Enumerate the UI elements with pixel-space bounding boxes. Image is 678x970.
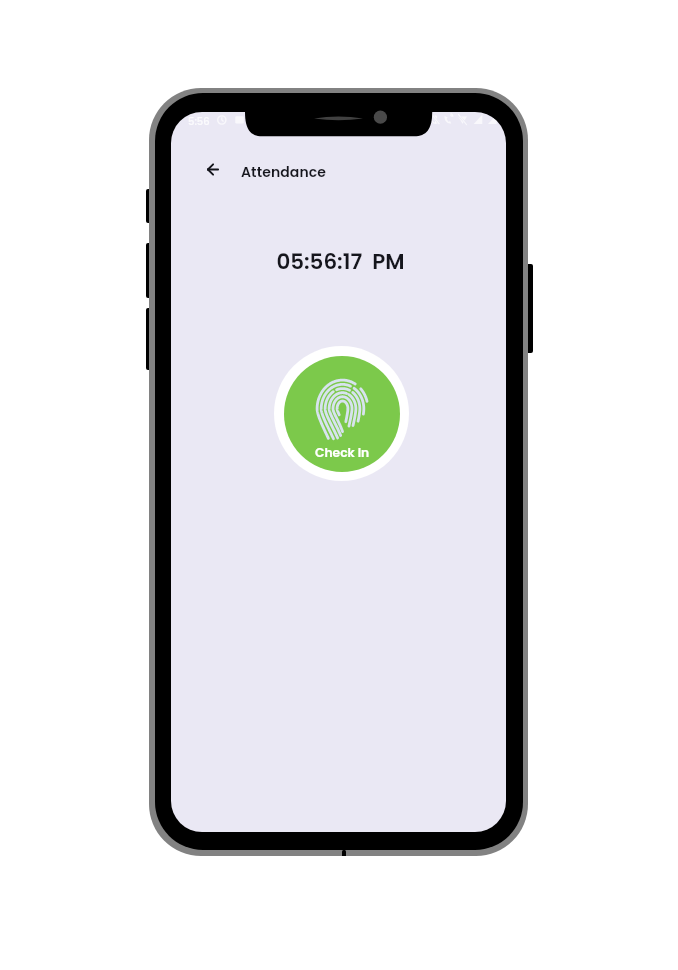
staticText: Attendance — [241, 162, 327, 182]
button[interactable]: Back — [199, 156, 226, 183]
button[interactable]: Check In — [274, 346, 409, 481]
staticText: Check In — [315, 444, 370, 461]
staticText: 05:56:17 PM — [173, 247, 506, 277]
staticText: 5:56 — [188, 114, 210, 128]
